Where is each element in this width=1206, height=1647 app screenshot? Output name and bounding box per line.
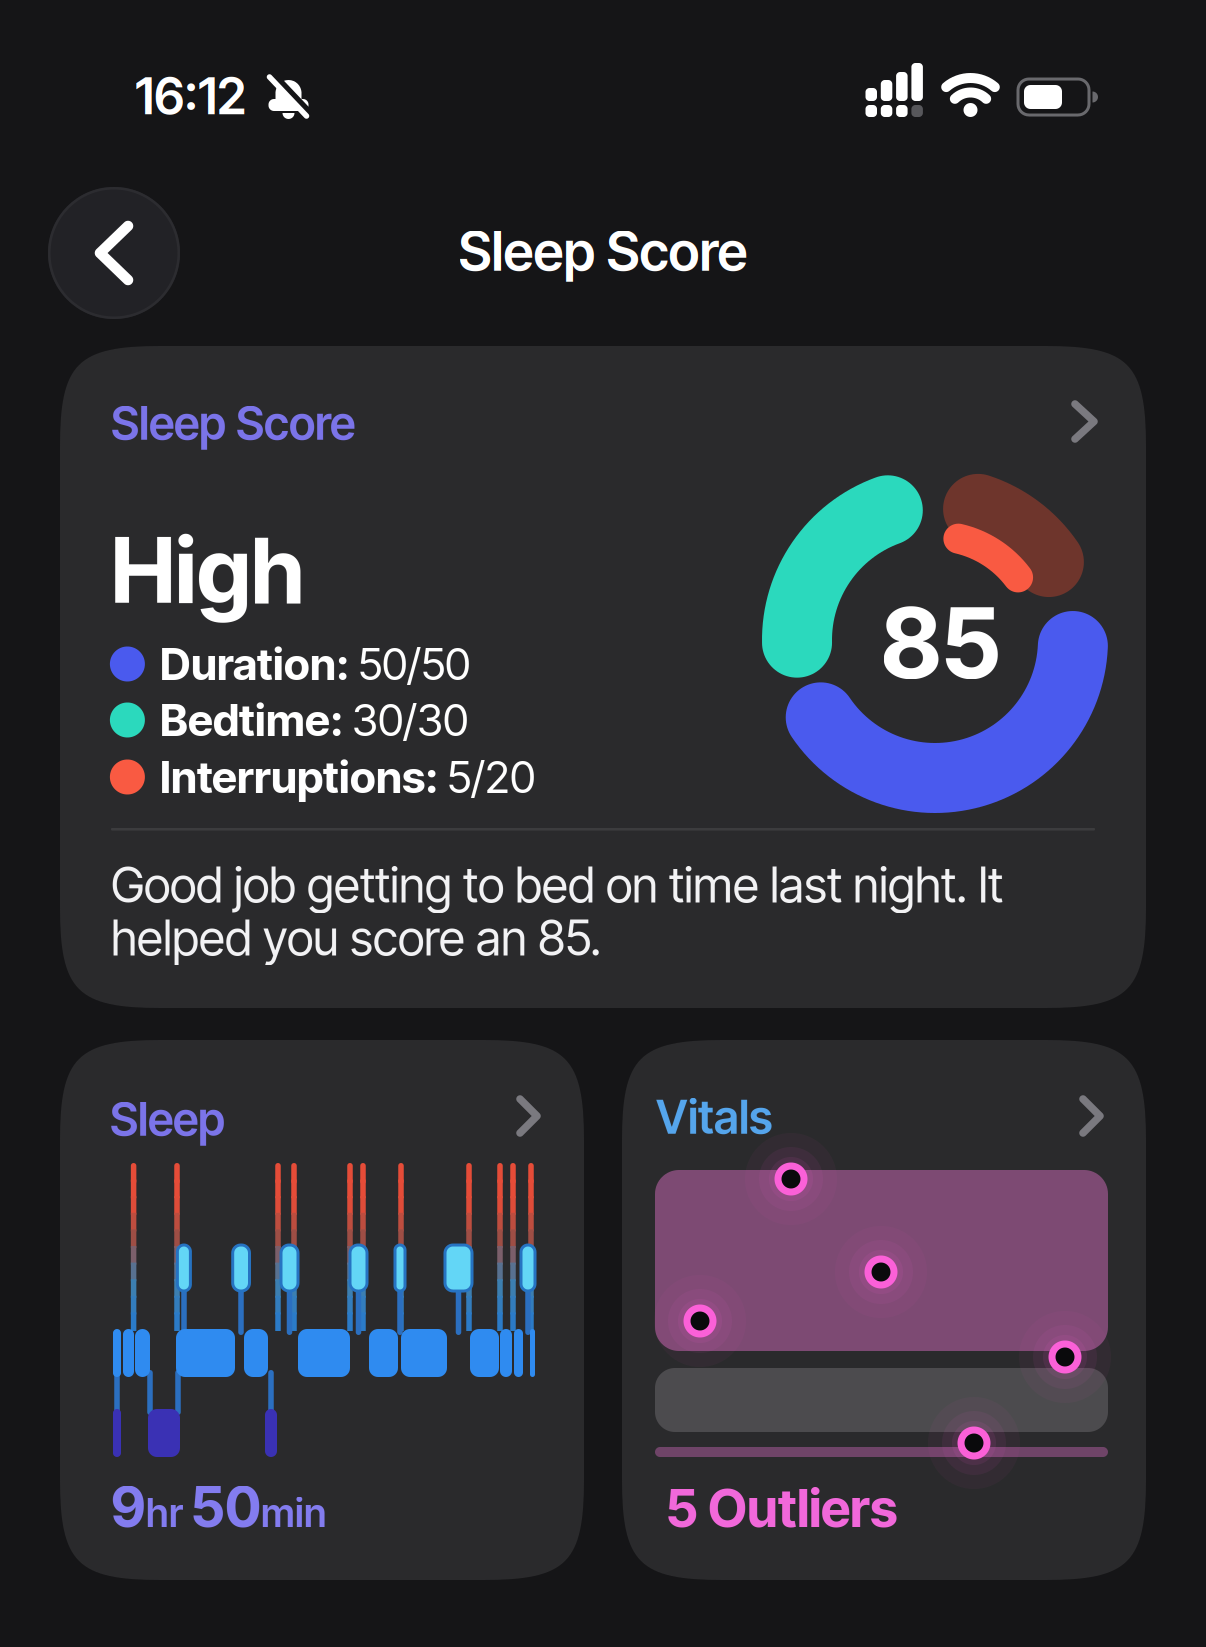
staticText: Sleep Score <box>111 395 355 451</box>
staticText: Sleep Score <box>458 218 747 284</box>
staticText: 9hr 50min <box>111 1475 326 1539</box>
button[interactable]: Sleep Score <box>60 346 1146 1008</box>
staticText: Vitals <box>656 1089 773 1145</box>
staticText: 85 <box>880 584 1001 702</box>
button[interactable]: Sleep <box>60 1040 584 1580</box>
staticText: High <box>111 516 304 624</box>
staticText: Duration: 50/50 <box>160 638 470 690</box>
staticText: 16:12 <box>135 66 246 126</box>
staticText: Sleep <box>110 1091 225 1147</box>
staticText: helped you score an 85. <box>111 909 601 967</box>
button[interactable]: Back <box>48 187 180 319</box>
staticText: Interruptions: 5/20 <box>160 751 535 803</box>
staticText: Bedtime: 30/30 <box>160 694 468 746</box>
staticText: Good job getting to bed on time last nig… <box>111 856 1003 914</box>
button[interactable]: Vitals <box>622 1040 1146 1580</box>
staticText: 5 Outliers <box>666 1476 897 1539</box>
